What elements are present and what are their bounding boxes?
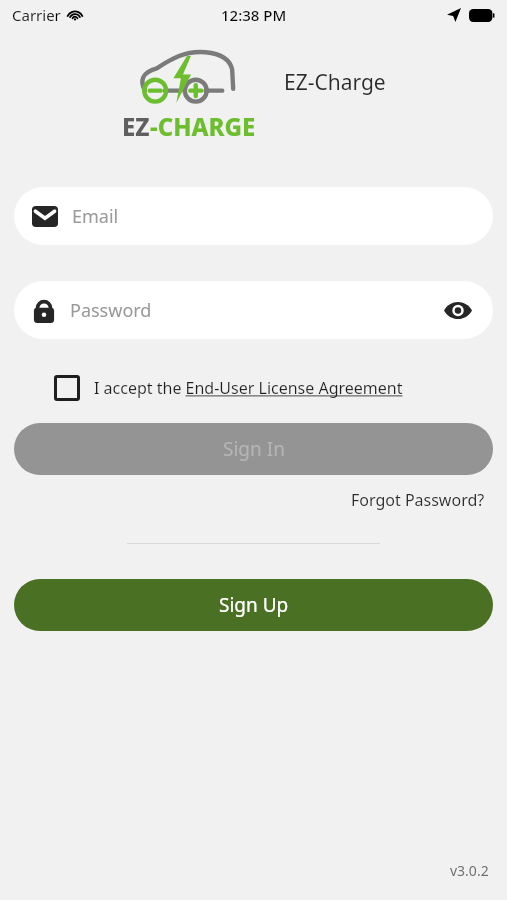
staticText: v3.0.2 <box>450 861 489 880</box>
button[interactable]: Forgot Password? <box>351 489 485 511</box>
button[interactable]: Show password <box>441 293 475 327</box>
staticText: Sign In <box>223 436 285 462</box>
staticText: -CHARGE <box>150 110 256 143</box>
staticText: EZ <box>122 110 150 143</box>
staticText: Sign Up <box>219 592 289 618</box>
button[interactable]: Sign In <box>14 423 493 475</box>
staticText: Forgot Password? <box>351 489 485 511</box>
staticText: Password <box>70 298 441 323</box>
staticText: I accept the End-User License Agreement <box>94 377 403 399</box>
button[interactable]: Email <box>14 187 493 245</box>
staticText: EZ-Charge <box>284 68 386 97</box>
button[interactable]: Password <box>14 281 493 339</box>
staticText: Email <box>72 204 119 229</box>
button[interactable]: I accept the End-User License Agreement <box>54 375 403 401</box>
staticText: 12:38 PM <box>221 5 287 25</box>
button[interactable]: Sign Up <box>14 579 493 631</box>
staticText: Carrier <box>12 5 61 25</box>
